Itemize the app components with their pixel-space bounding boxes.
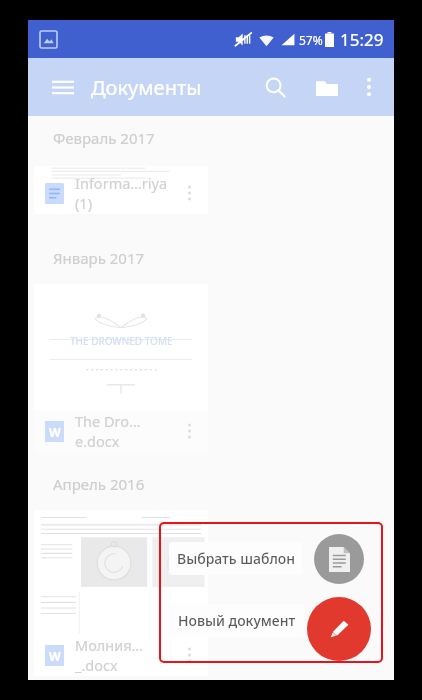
button[interactable]: THE DROWNED TOME (34, 284, 208, 452)
staticText: Февраль 2017 (53, 128, 155, 148)
button[interactable]: Выбрать шаблон (169, 542, 302, 575)
button[interactable]: Folders (306, 66, 348, 108)
button[interactable]: Item options (176, 642, 202, 668)
button[interactable]: Item options (176, 180, 202, 206)
staticText: Молния…_.docx (75, 635, 176, 675)
staticText: Январь 2017 (53, 248, 145, 268)
button[interactable]: Informa…riya (1) (34, 166, 208, 214)
button[interactable]: Choose template (314, 534, 364, 584)
button[interactable]: Open navigation drawer (45, 69, 81, 105)
button[interactable]: W (34, 510, 208, 676)
staticText: Новый документ (178, 611, 296, 630)
button[interactable]: Новый документ (169, 604, 304, 637)
staticText: 15:29 (340, 28, 384, 51)
staticText: Апрель 2016 (53, 474, 145, 494)
staticText: THE DROWNED TOME (70, 334, 173, 348)
button[interactable]: Search (254, 66, 296, 108)
staticText: W (49, 424, 61, 440)
staticText: 57% (299, 32, 323, 48)
staticText: Документы (91, 74, 202, 101)
staticText: W (49, 648, 61, 664)
staticText: The Dro…e.docx (75, 411, 176, 451)
button[interactable]: More options (350, 68, 388, 106)
button[interactable]: Item options (176, 418, 202, 444)
staticText: Informa…riya (1) (75, 173, 176, 213)
staticText: Выбрать шаблон (177, 549, 295, 568)
button[interactable]: New document (307, 597, 371, 661)
